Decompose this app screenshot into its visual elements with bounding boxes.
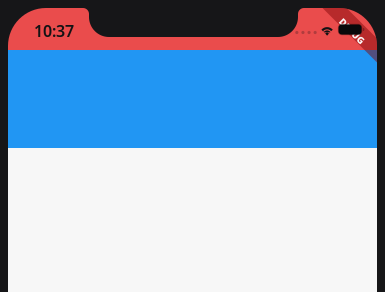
- staticText: 10:37: [34, 20, 74, 41]
- staticText: DEBUG: [336, 25, 368, 37]
